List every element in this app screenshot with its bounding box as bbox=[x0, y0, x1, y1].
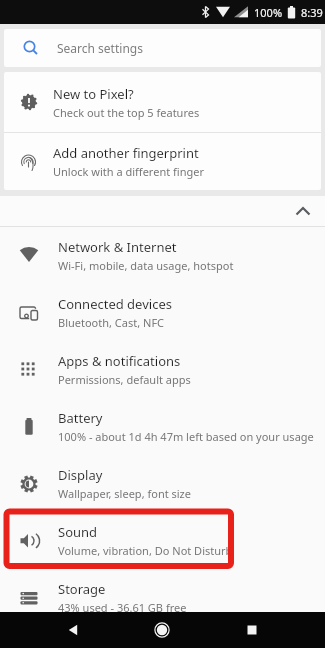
staticText: 8:39 bbox=[301, 5, 323, 20]
button[interactable]: New to Pixel? bbox=[4, 72, 321, 132]
staticText: Display bbox=[58, 466, 103, 484]
staticText: Volume, vibration, Do Not Disturb bbox=[58, 543, 233, 558]
staticText: Add another fingerprint bbox=[53, 144, 199, 162]
button[interactable]: Sound bbox=[0, 512, 325, 569]
staticText: Apps & notifications bbox=[58, 352, 181, 370]
button[interactable]: Display bbox=[0, 455, 325, 512]
staticText: 43% used - 36.61 GB free bbox=[58, 600, 187, 615]
staticText: Bluetooth, Cast, NFC bbox=[58, 315, 165, 330]
staticText: Connected devices bbox=[58, 295, 172, 313]
button[interactable] bbox=[222, 612, 282, 648]
staticText: New to Pixel? bbox=[53, 85, 134, 103]
button[interactable]: Apps & notifications bbox=[0, 341, 325, 398]
staticText: 100% - about 1d 4h 47m left based on you… bbox=[58, 429, 314, 444]
staticText: Wi-Fi, mobile, data usage, hotspot bbox=[58, 258, 234, 273]
button[interactable]: Network & Internet bbox=[0, 227, 325, 284]
staticText: Unlock with a different finger bbox=[53, 164, 204, 179]
staticText: 100% bbox=[254, 5, 283, 20]
button[interactable]: Search settings bbox=[4, 29, 321, 67]
button[interactable] bbox=[132, 612, 192, 648]
staticText: Check out the top 5 features bbox=[53, 105, 200, 120]
staticText: Network & Internet bbox=[58, 238, 177, 256]
button[interactable]: Connected devices bbox=[0, 284, 325, 341]
staticText: Wallpaper, sleep, font size bbox=[58, 486, 191, 501]
staticText: Sound bbox=[58, 523, 98, 541]
button[interactable]: Storage bbox=[0, 569, 325, 626]
button[interactable]: Add another fingerprint bbox=[4, 133, 321, 190]
staticText: Search settings bbox=[57, 40, 143, 56]
staticText: Battery bbox=[58, 409, 103, 427]
staticText: Permissions, default apps bbox=[58, 372, 191, 387]
button[interactable]: Battery bbox=[0, 398, 325, 455]
button[interactable] bbox=[43, 612, 103, 648]
staticText: Storage bbox=[58, 580, 106, 598]
button[interactable] bbox=[0, 196, 325, 226]
